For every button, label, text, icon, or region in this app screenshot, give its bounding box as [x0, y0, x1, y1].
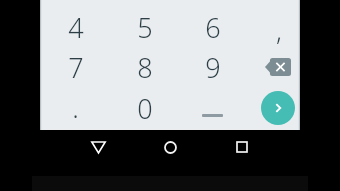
button[interactable]: .	[43, 86, 108, 128]
staticText: 7	[68, 49, 84, 86]
button[interactable]: 7	[43, 46, 108, 88]
staticText: 8	[137, 49, 153, 86]
button[interactable]: ,	[246, 9, 311, 51]
button[interactable]: Space	[180, 87, 244, 129]
staticText: 0	[137, 90, 153, 127]
staticText: ,	[276, 13, 282, 48]
staticText: .	[72, 89, 79, 126]
button[interactable]: 6	[180, 6, 245, 48]
button[interactable]: 5	[112, 6, 177, 48]
staticText: 5	[137, 9, 153, 46]
staticText: 6	[205, 9, 221, 46]
button[interactable]: Recent apps	[222, 131, 262, 163]
staticText: 4	[68, 9, 84, 46]
button[interactable]: 8	[112, 46, 177, 88]
button[interactable]: 0	[112, 87, 177, 129]
button[interactable]: Backspace	[246, 46, 310, 88]
button[interactable]: Home	[150, 131, 190, 163]
button[interactable]: 4	[43, 6, 108, 48]
staticText: 9	[205, 49, 221, 86]
button[interactable]: Back	[78, 131, 118, 163]
button[interactable]: 9	[180, 46, 245, 88]
button[interactable]: Submit	[261, 91, 295, 125]
